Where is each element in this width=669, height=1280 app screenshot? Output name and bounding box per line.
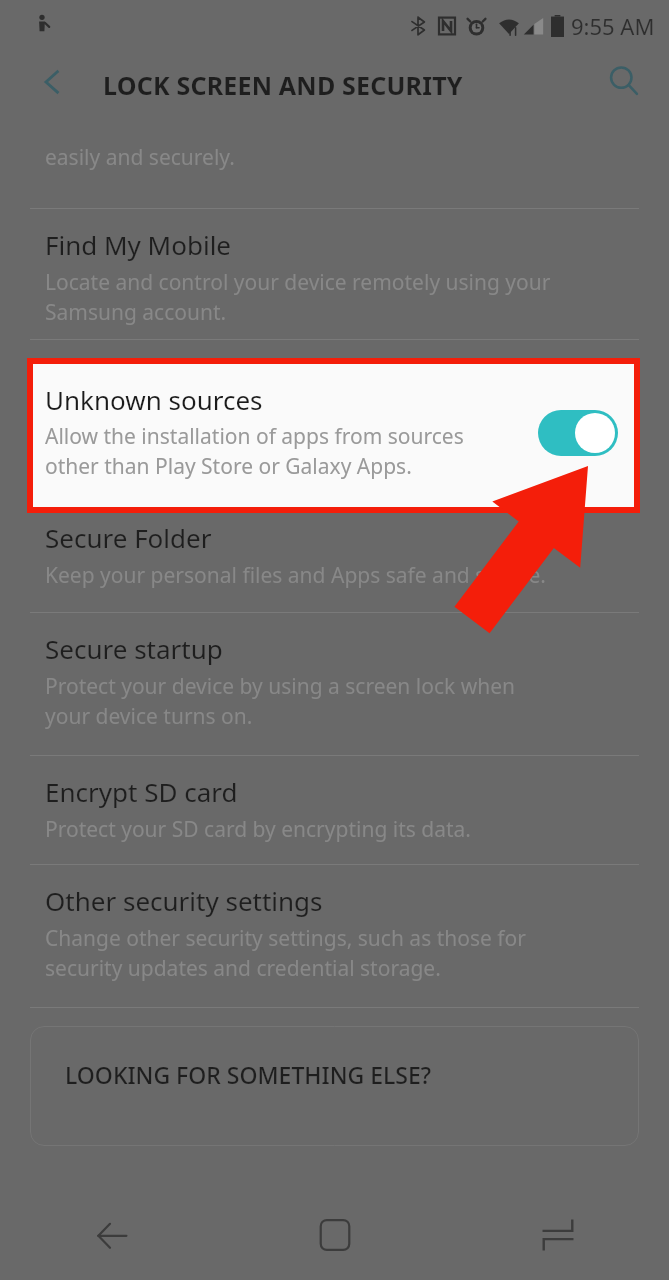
staticText: easily and securely. <box>45 143 235 172</box>
button[interactable]: Unknown sources toggle, on <box>538 410 618 456</box>
staticText: Protect your SD card by encrypting its d… <box>45 815 471 844</box>
button[interactable]: Search <box>593 50 655 112</box>
button[interactable]: Back <box>22 52 82 112</box>
button[interactable]: Recents <box>446 1190 669 1280</box>
staticText: Locate and control your device remotely … <box>45 268 551 326</box>
staticText: Unknown sources <box>45 382 263 417</box>
staticText: Keep your personal files and Apps safe a… <box>45 561 546 590</box>
staticText: LOCK SCREEN AND SECURITY <box>103 68 463 102</box>
staticText: Find My Mobile <box>45 227 232 262</box>
button[interactable]: Back <box>0 1190 223 1280</box>
button[interactable]: Other security settings <box>0 865 669 1007</box>
staticText: Encrypt SD card <box>45 774 238 809</box>
staticText: Secure Folder <box>45 520 212 555</box>
staticText: Other security settings <box>45 883 323 918</box>
button[interactable]: Unknown sources <box>27 358 640 513</box>
button[interactable]: Encrypt SD card <box>0 756 669 864</box>
staticText: Protect your device by using a screen lo… <box>45 672 515 730</box>
button[interactable]: Find My Mobile <box>0 209 669 339</box>
button[interactable]: Secure startup <box>0 613 669 755</box>
staticText: Secure startup <box>45 631 223 666</box>
staticText: 9:55 AM <box>571 11 655 41</box>
staticText: LOOKING FOR SOMETHING ELSE? <box>65 1059 432 1090</box>
button[interactable]: Secure Folder <box>0 502 669 612</box>
button[interactable]: LOOKING FOR SOMETHING ELSE? <box>30 1026 639 1146</box>
button[interactable]: Home <box>223 1190 446 1280</box>
button[interactable] <box>0 340 669 502</box>
button[interactable]: easily and securely. <box>0 130 669 208</box>
staticText: Allow the installation of apps from sour… <box>45 422 464 480</box>
staticText: Change other security settings, such as … <box>45 924 526 982</box>
